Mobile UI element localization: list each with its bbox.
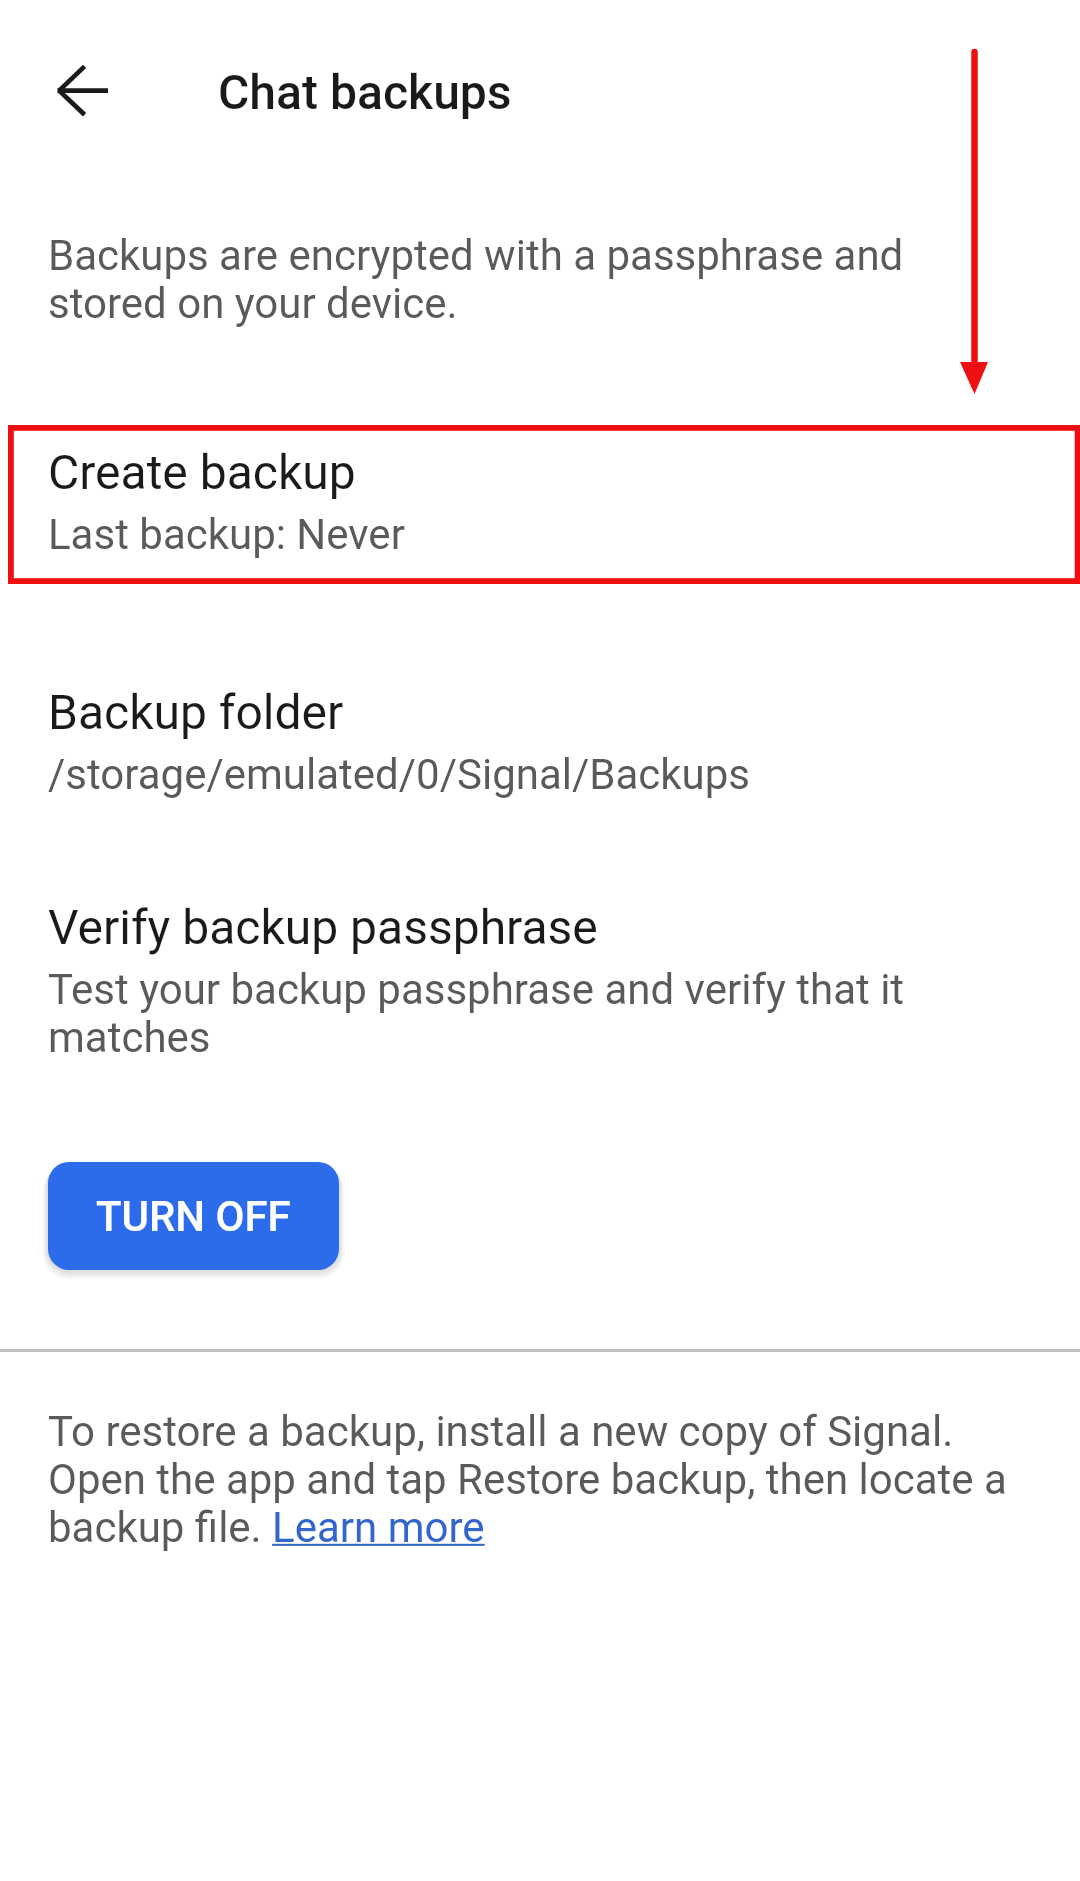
staticText: Backup folder bbox=[48, 684, 344, 740]
staticText: Last backup: Never bbox=[48, 510, 405, 559]
staticText: /storage/emulated/0/Signal/Backups bbox=[48, 750, 751, 799]
staticText: Test your backup passphrase and verify t… bbox=[48, 965, 918, 1062]
button[interactable]: Back bbox=[35, 45, 131, 141]
button[interactable]: Verify backup passphrase bbox=[0, 856, 1080, 1066]
staticText: Backups are encrypted with a passphrase … bbox=[48, 231, 918, 328]
button[interactable]: TURN OFF bbox=[48, 1162, 339, 1270]
staticText: Create backup bbox=[48, 444, 356, 500]
staticText: Chat backups bbox=[218, 64, 512, 120]
button[interactable]: Backup folder bbox=[0, 641, 1080, 801]
staticText: Verify backup passphrase bbox=[48, 899, 598, 955]
staticText: TURN OFF bbox=[96, 1192, 291, 1241]
button[interactable]: Create backup bbox=[0, 401, 1080, 561]
staticText: To restore a backup, install a new copy … bbox=[48, 1407, 1033, 1552]
